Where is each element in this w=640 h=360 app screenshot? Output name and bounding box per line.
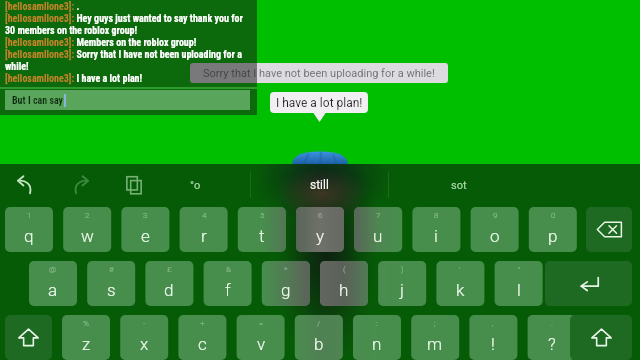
staticText: x — [140, 334, 149, 354]
button[interactable]: Sorry that I have not been uploading for… — [190, 63, 448, 83]
button[interactable]: 8 — [412, 207, 460, 252]
button[interactable]: " — [495, 261, 543, 306]
button[interactable]: Redo — [68, 171, 96, 199]
button[interactable]: 4 — [180, 207, 228, 252]
staticText: ? — [548, 334, 556, 354]
staticText: ' — [459, 265, 461, 274]
button[interactable]: 9 — [471, 207, 519, 252]
staticText: j — [400, 280, 404, 300]
staticText: o — [490, 226, 500, 246]
button[interactable]: - — [120, 315, 168, 360]
button[interactable]: = — [237, 315, 285, 360]
button[interactable]: °o — [140, 164, 250, 206]
button[interactable]: @ — [29, 261, 77, 306]
button[interactable]: 1 — [5, 207, 53, 252]
staticText: [hellosamllone3]: Members on the roblox … — [5, 37, 197, 49]
button[interactable]: . — [528, 315, 576, 360]
staticText: y — [316, 226, 325, 246]
button[interactable]: 7 — [354, 207, 402, 252]
staticText: f — [225, 280, 231, 300]
staticText: d — [164, 280, 174, 300]
staticText: 4 — [202, 211, 207, 220]
button[interactable]: Backspace — [586, 207, 632, 252]
staticText: : — [376, 319, 378, 328]
staticText: 30 members on the roblox group! — [5, 25, 138, 37]
staticText: 7 — [376, 211, 381, 220]
button[interactable]: 0 — [529, 207, 577, 252]
button[interactable]: ; — [411, 315, 459, 360]
button[interactable]: 3 — [121, 207, 169, 252]
staticText: * — [284, 265, 288, 274]
button[interactable]: ( — [320, 261, 368, 306]
staticText: still — [310, 178, 329, 192]
staticText: g — [281, 280, 291, 300]
staticText: I have a lot plan! — [276, 96, 363, 110]
button[interactable]: , — [469, 315, 517, 360]
staticText: q — [24, 226, 34, 246]
button[interactable]: Undo — [10, 171, 38, 199]
staticText: , — [492, 319, 494, 328]
button[interactable]: ' — [436, 261, 484, 306]
staticText: k — [456, 280, 465, 300]
staticText: s — [107, 280, 116, 300]
staticText: z — [82, 334, 91, 354]
button[interactable]: # — [87, 261, 135, 306]
button[interactable]: ) — [378, 261, 426, 306]
staticText: c — [198, 334, 207, 354]
staticText: - — [143, 319, 146, 328]
staticText: [hellosamllone3]: Sorry that I have not … — [5, 49, 242, 61]
staticText: . — [551, 319, 553, 328]
staticText: 9 — [493, 211, 498, 220]
button[interactable]: Clipboard — [120, 171, 148, 199]
button[interactable]: Shift — [5, 315, 52, 360]
staticText: v — [257, 334, 266, 354]
staticText: h — [339, 280, 349, 300]
staticText: w — [81, 226, 94, 246]
staticText: °o — [190, 179, 201, 192]
staticText: l — [517, 280, 521, 300]
staticText: ! — [491, 334, 495, 354]
staticText: 1 — [27, 211, 32, 220]
button[interactable]: But I can say — [5, 90, 250, 110]
staticText: # — [109, 265, 114, 274]
staticText: r — [201, 226, 207, 246]
button[interactable]: * — [262, 261, 310, 306]
button[interactable]: £ — [145, 261, 193, 306]
button[interactable]: : — [353, 315, 401, 360]
staticText: 3 — [143, 211, 148, 220]
button[interactable]: & — [204, 261, 252, 306]
button[interactable]: still — [251, 164, 388, 206]
button[interactable]: Shift — [570, 315, 632, 360]
staticText: Sorry that I have not been uploading for… — [203, 67, 435, 80]
staticText: u — [373, 226, 383, 246]
staticText: " — [518, 265, 521, 274]
staticText: £ — [167, 265, 172, 274]
staticText: 2 — [85, 211, 90, 220]
staticText: 6 — [318, 211, 323, 220]
staticText: sot — [451, 179, 467, 192]
staticText: 5 — [260, 211, 265, 220]
button[interactable]: 5 — [238, 207, 286, 252]
staticText: @ — [49, 265, 57, 274]
staticText: [hellosamllone3]: I have a lot plan! — [5, 73, 143, 85]
staticText: while! — [5, 61, 29, 73]
button[interactable]: Enter — [545, 261, 632, 306]
staticText: b — [314, 334, 324, 354]
button[interactable]: 6 — [296, 207, 344, 252]
staticText: But I can say — [12, 95, 64, 107]
staticText: ; — [434, 319, 436, 328]
button[interactable]: % — [62, 315, 110, 360]
button[interactable]: 2 — [63, 207, 111, 252]
button[interactable]: sot — [389, 164, 529, 206]
button[interactable]: / — [295, 315, 343, 360]
staticText: 0 — [551, 211, 556, 220]
staticText: e — [141, 226, 150, 246]
staticText: p — [548, 226, 558, 246]
button[interactable]: + — [178, 315, 226, 360]
staticText: = — [259, 319, 264, 328]
staticText: n — [372, 334, 382, 354]
staticText: ) — [401, 265, 404, 274]
staticText: i — [434, 226, 438, 246]
staticText: t — [259, 226, 265, 246]
staticText: a — [48, 280, 58, 300]
